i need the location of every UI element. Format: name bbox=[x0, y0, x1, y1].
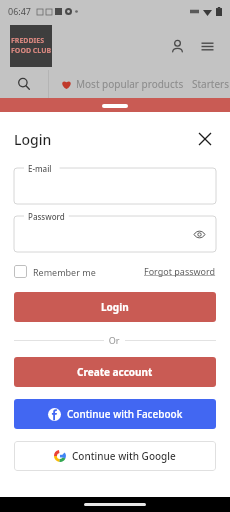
button[interactable]: Search bbox=[0, 70, 48, 98]
button[interactable]: Most popular products bbox=[61, 70, 184, 98]
button[interactable]: Login bbox=[14, 292, 216, 322]
staticText: Continue with Google bbox=[72, 449, 176, 463]
button[interactable]: Forgot password bbox=[144, 265, 216, 277]
button[interactable]: Remember me bbox=[14, 265, 96, 278]
staticText: Password bbox=[28, 211, 65, 222]
staticText: Most popular products bbox=[76, 77, 184, 91]
button[interactable]: Starters bbox=[192, 70, 230, 98]
button[interactable]: Show password bbox=[190, 225, 208, 243]
button[interactable]: FREDDIES bbox=[10, 25, 52, 67]
staticText: E-mail bbox=[28, 163, 52, 174]
staticText: Create account bbox=[77, 365, 153, 379]
staticText: Forgot password bbox=[144, 265, 216, 277]
button[interactable]: Menu bbox=[194, 33, 220, 59]
staticText: Login bbox=[101, 300, 129, 314]
button[interactable]: Continue with Facebook bbox=[14, 399, 216, 429]
staticText: FOOD CLUB bbox=[11, 46, 52, 56]
staticText: Login bbox=[14, 130, 52, 149]
staticText: Remember me bbox=[33, 266, 96, 278]
staticText: Or bbox=[104, 334, 125, 346]
staticText: FREDDIES bbox=[11, 36, 45, 46]
staticText: Continue with Facebook bbox=[67, 407, 183, 421]
button[interactable]: Create account bbox=[14, 357, 216, 387]
button[interactable]: Continue with Google bbox=[14, 441, 216, 471]
staticText: Starters bbox=[192, 77, 230, 91]
button[interactable]: Account bbox=[164, 33, 190, 59]
button[interactable]: Close bbox=[194, 128, 216, 150]
staticText: 06:47 bbox=[8, 5, 32, 17]
